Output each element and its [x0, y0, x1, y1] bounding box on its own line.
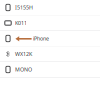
button[interactable]: I5155H: [0, 0, 100, 15]
staticText: MONO: [15, 66, 32, 73]
staticText: WX12K: [15, 50, 32, 58]
button[interactable]: iPhone: [0, 31, 100, 46]
staticText: I5155H: [15, 4, 33, 11]
staticText: iPhone: [33, 35, 49, 42]
button[interactable]: MONO: [0, 62, 100, 77]
button[interactable]: WX12K: [0, 46, 100, 61]
button[interactable]: K011: [0, 15, 100, 30]
staticText: K011: [15, 19, 27, 27]
